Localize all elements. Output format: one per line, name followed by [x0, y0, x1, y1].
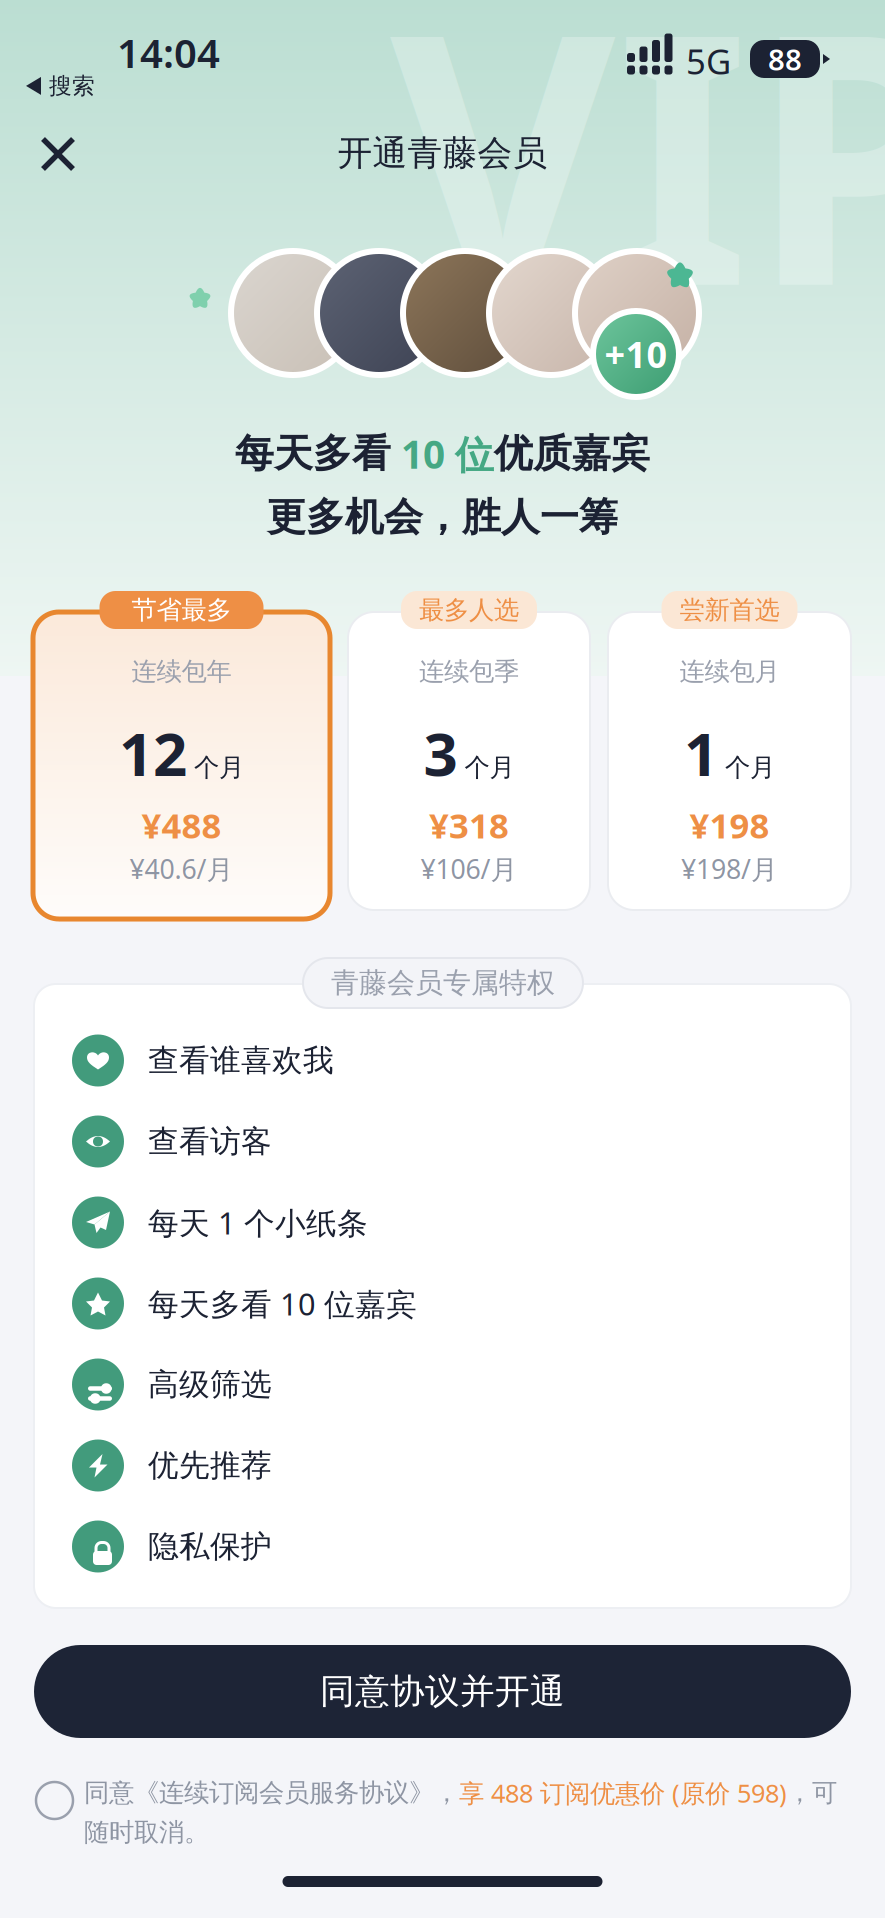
staticText: 连续包年	[131, 656, 231, 687]
staticText: ¥106/月	[420, 851, 517, 886]
staticText: 优先推荐	[148, 1447, 272, 1484]
staticText: 高级筛选	[148, 1366, 272, 1403]
staticText: 88	[768, 39, 802, 78]
staticText: 最多人选	[419, 594, 519, 625]
staticText: 查看访客	[148, 1123, 272, 1160]
staticText: 10 位	[391, 428, 494, 479]
staticText: ¥198/月	[681, 851, 778, 886]
staticText: 随时取消。	[84, 1817, 209, 1848]
staticText: 连续包季	[419, 656, 519, 687]
staticText: VIP	[390, 0, 885, 380]
staticText: 个月	[464, 752, 514, 783]
staticText: 个月	[725, 752, 775, 783]
staticText: ¥488	[141, 802, 221, 848]
staticText: 每天多看	[235, 430, 391, 477]
staticText: 更多机会，胜人一筹	[267, 493, 618, 541]
button[interactable]: 同意《连续订阅会员服务协议》，	[36, 1776, 885, 1876]
button[interactable]: 连续包月	[608, 591, 851, 925]
staticText: 开通青藤会员	[337, 132, 547, 175]
staticText: 每天多看 10 位嘉宾	[148, 1283, 417, 1324]
staticText: 同意《连续订阅会员服务协议》，	[84, 1777, 459, 1808]
button[interactable]: 连续包年	[33, 591, 330, 925]
staticText: ，可	[787, 1777, 837, 1808]
staticText: 每天 1 个小纸条	[148, 1202, 368, 1243]
staticText: 搜索	[49, 72, 95, 100]
staticText: 优质嘉宾	[494, 430, 650, 477]
staticText: 尝新首选	[679, 594, 779, 625]
staticText: 12	[119, 713, 187, 793]
staticText: 同意协议并开通	[320, 1670, 565, 1713]
staticText: 1	[684, 713, 718, 793]
button[interactable]: 返回搜索	[26, 72, 95, 100]
staticText: 查看谁喜欢我	[148, 1042, 334, 1079]
staticText: 享 488 订阅优惠价 (原价 598)	[459, 1776, 787, 1810]
button[interactable]: 同意协议并开通	[34, 1645, 851, 1738]
staticText: ¥40.6/月	[129, 851, 233, 886]
staticText: 3	[423, 713, 457, 793]
staticText: ¥198	[689, 802, 769, 848]
staticText: 隐私保护	[148, 1528, 272, 1565]
staticText: 青藤会员专属特权	[331, 966, 555, 1000]
staticText: +10	[604, 330, 667, 378]
staticText: 5G	[686, 38, 731, 84]
staticText: 节省最多	[131, 594, 231, 625]
button[interactable]: 关闭	[20, 116, 96, 192]
staticText: 连续包月	[679, 656, 779, 687]
button[interactable]: 连续包季	[348, 591, 590, 925]
staticText: ¥318	[429, 802, 509, 848]
staticText: 个月	[194, 752, 244, 783]
staticText: 14:04	[117, 26, 220, 79]
